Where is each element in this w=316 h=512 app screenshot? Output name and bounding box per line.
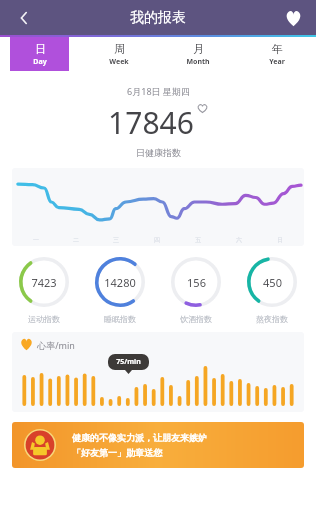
button[interactable]: 一 xyxy=(12,168,304,246)
staticText: 日 xyxy=(277,236,283,244)
staticText: 月 xyxy=(193,42,204,56)
staticText: 睡眠指数 xyxy=(104,314,136,324)
button[interactable]: 7423 xyxy=(6,256,82,324)
staticText: 「好友第一」勋章送您 xyxy=(72,447,162,458)
button[interactable]: 健康的不像实力派，让朋友来嫉妒 xyxy=(12,422,304,468)
staticText: 日健康指数 xyxy=(136,147,181,158)
staticText: 450 xyxy=(263,275,282,290)
staticText: 我的报表 xyxy=(130,9,186,27)
staticText: 心率/min xyxy=(37,339,75,351)
button[interactable]: 年 xyxy=(237,37,316,71)
button[interactable]: 日 xyxy=(10,37,69,71)
button[interactable]: 156 xyxy=(158,256,234,324)
staticText: 五 xyxy=(195,236,201,244)
staticText: 六 xyxy=(236,236,242,244)
staticText: 运动指数 xyxy=(28,314,60,324)
staticText: 156 xyxy=(187,275,206,290)
staticText: Year xyxy=(269,57,285,67)
staticText: 健康的不像实力派，让朋友来嫉妒 xyxy=(72,432,207,443)
staticText: 饮酒指数 xyxy=(180,314,212,324)
staticText: 三 xyxy=(113,236,119,244)
button[interactable]: 心率/min xyxy=(12,332,304,412)
button[interactable]: 月 xyxy=(158,37,237,71)
staticText: 二 xyxy=(73,236,79,244)
button[interactable]: Favorite xyxy=(278,3,308,33)
staticText: 熬夜指数 xyxy=(256,314,288,324)
button[interactable]: Back xyxy=(8,2,40,34)
staticText: 75/min xyxy=(116,357,141,367)
button[interactable]: 14280 xyxy=(82,256,158,324)
staticText: 17846 xyxy=(108,102,194,143)
staticText: 日 xyxy=(35,42,46,56)
staticText: 6月18日 星期四 xyxy=(127,85,190,97)
staticText: 7423 xyxy=(31,275,57,290)
staticText: 周 xyxy=(114,42,125,56)
staticText: Week xyxy=(109,57,129,67)
staticText: Day xyxy=(33,57,47,67)
staticText: 14280 xyxy=(104,275,136,290)
button[interactable]: 周 xyxy=(79,37,158,71)
button[interactable]: 450 xyxy=(234,256,310,324)
staticText: 年 xyxy=(272,42,283,56)
staticText: 一 xyxy=(33,236,39,244)
staticText: Month xyxy=(186,57,210,67)
staticText: 四 xyxy=(154,236,160,244)
